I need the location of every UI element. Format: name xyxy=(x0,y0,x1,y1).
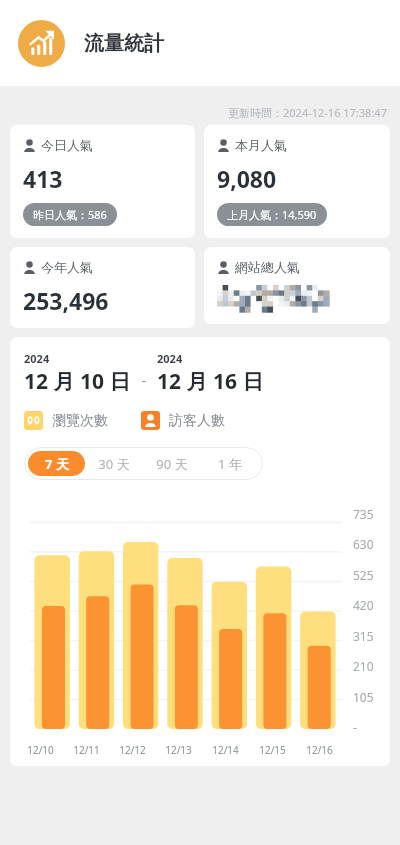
button[interactable]: Traffic statistics xyxy=(18,20,65,67)
button[interactable]: 1 年 xyxy=(201,451,259,476)
button[interactable]: 30 天 xyxy=(85,451,143,476)
staticText: 12 月 10 日 xyxy=(24,367,131,396)
staticText: 12 月 16 日 xyxy=(157,367,264,396)
staticText: 今日人氣 xyxy=(41,137,93,153)
button[interactable]: 今日人氣 xyxy=(10,125,195,238)
staticText: 12/12 xyxy=(119,743,146,757)
staticText: 12/16 xyxy=(306,743,333,757)
staticText: 630 xyxy=(353,536,374,552)
staticText: 更新時間：2024-12-16 17:38:47 xyxy=(228,105,387,120)
button[interactable]: 訪客人數 xyxy=(141,411,225,430)
staticText: 瀏覽次數 xyxy=(52,412,108,430)
staticText: - xyxy=(142,372,146,388)
staticText: 525 xyxy=(353,567,374,583)
staticText: 1 年 xyxy=(218,455,242,473)
staticText: 今年人氣 xyxy=(41,259,93,275)
staticText: - xyxy=(353,719,357,735)
staticText: 2024 xyxy=(24,351,50,366)
staticText: 昨日人氣：586 xyxy=(33,207,107,222)
staticText: 420 xyxy=(353,597,374,613)
staticText: 735 xyxy=(353,506,374,522)
button[interactable]: 網站總人氣 xyxy=(204,247,390,324)
staticText: 12/10 xyxy=(27,743,54,757)
button[interactable]: 90 天 xyxy=(143,451,201,476)
button[interactable]: 7 天 xyxy=(28,451,85,476)
button[interactable]: 昨日人氣：586 xyxy=(23,203,117,226)
staticText: 90 天 xyxy=(156,455,188,473)
staticText: 9,080 xyxy=(217,163,277,194)
button[interactable]: 上月人氣：14,590 xyxy=(217,203,327,226)
button[interactable]: 今年人氣 xyxy=(10,247,195,328)
staticText: 315 xyxy=(353,628,374,644)
staticText: 流量統計 xyxy=(84,31,164,56)
staticText: 30 天 xyxy=(98,455,130,473)
staticText: 上月人氣：14,590 xyxy=(227,207,317,222)
staticText: 12/13 xyxy=(165,743,192,757)
staticText: 訪客人數 xyxy=(169,412,225,430)
staticText: 12/11 xyxy=(73,743,100,757)
staticText: 210 xyxy=(353,658,374,674)
staticText: 413 xyxy=(23,163,63,194)
staticText: 7 天 xyxy=(45,455,69,473)
staticText: 12/14 xyxy=(212,743,239,757)
staticText: 網站總人氣 xyxy=(235,259,300,275)
staticText: 253,496 xyxy=(23,285,109,316)
button[interactable]: 瀏覽次數 xyxy=(24,411,108,430)
button[interactable]: 本月人氣 xyxy=(204,125,390,238)
staticText: 本月人氣 xyxy=(235,137,287,153)
staticText: 105 xyxy=(353,689,374,705)
staticText: 2024 xyxy=(157,351,183,366)
staticText: 12/15 xyxy=(259,743,286,757)
